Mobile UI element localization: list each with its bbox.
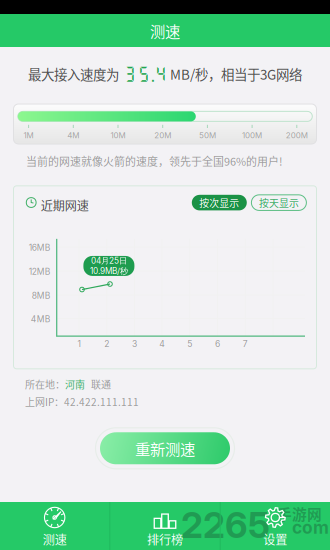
staticText: 12MB xyxy=(29,266,51,277)
staticText: 50M xyxy=(199,131,216,140)
staticText: 当前的网速就像火箭的速度，领先于全国96%的用户! xyxy=(26,153,283,169)
staticText: 按天显示 xyxy=(259,195,299,210)
staticText: 按次显示 xyxy=(199,195,239,210)
staticText: 4M xyxy=(67,131,79,140)
staticText: 8MB xyxy=(32,290,51,301)
staticText: 4 xyxy=(159,339,165,349)
staticText: . xyxy=(152,64,153,83)
staticText: 1M xyxy=(24,131,34,140)
staticText: 上网IP：42.422.111.111 xyxy=(25,394,139,409)
staticText: 手游网 xyxy=(277,503,322,524)
staticText: 200M xyxy=(286,131,308,140)
staticText: 100M xyxy=(242,131,262,140)
staticText: 6 xyxy=(215,339,220,349)
button[interactable]: 按天显示 xyxy=(251,195,306,210)
staticText: 16MB xyxy=(29,242,51,253)
staticText: 近期网速 xyxy=(41,196,89,214)
staticText: 20M xyxy=(154,131,171,140)
staticText: 重新测速 xyxy=(135,437,195,459)
staticText: 1 xyxy=(77,339,80,349)
staticText: 04月25日 xyxy=(91,255,127,266)
staticText: 所在地： xyxy=(25,377,65,391)
staticText: com xyxy=(292,517,329,538)
staticText: 最大接入速度为 xyxy=(28,64,119,84)
button[interactable]: 重新测速 xyxy=(95,428,234,469)
button[interactable]: 测速 xyxy=(0,502,109,550)
staticText: 3 xyxy=(132,339,137,349)
staticText: 排行榜 xyxy=(147,530,183,548)
staticText: 设置 xyxy=(263,530,287,548)
staticText: 2265 xyxy=(181,503,270,547)
staticText: 7 xyxy=(243,339,248,349)
staticText: 4MB xyxy=(31,314,51,324)
staticText: 5 xyxy=(138,64,150,83)
staticText: 5 xyxy=(187,339,192,349)
staticText: 2 xyxy=(104,339,109,349)
staticText: 测速 xyxy=(43,530,67,548)
staticText: 10.9MB/秒 xyxy=(90,266,128,276)
staticText: 测速 xyxy=(150,19,180,42)
button[interactable]: 排行榜 xyxy=(110,502,220,550)
staticText: 联通 xyxy=(85,377,111,391)
staticText: MB/秒，相当于3G网络 xyxy=(170,64,302,84)
staticText: 河南 xyxy=(65,377,85,391)
staticText: 4 xyxy=(155,64,167,83)
button[interactable]: 按次显示 xyxy=(192,195,247,210)
staticText: 3 xyxy=(124,64,136,83)
staticText: 10M xyxy=(110,131,125,140)
button[interactable]: 设置 xyxy=(221,502,330,550)
